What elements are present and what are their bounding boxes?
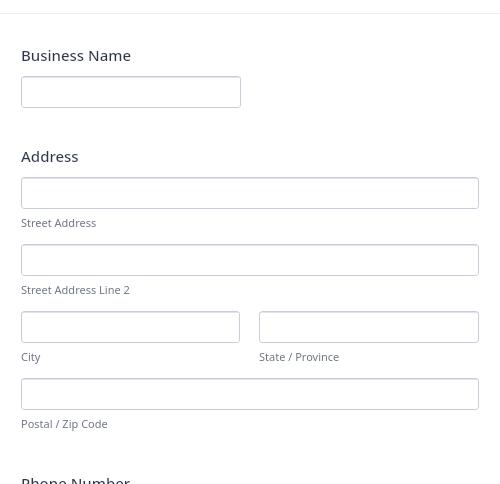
button[interactable]: Postal / Zip Code <box>21 378 479 410</box>
staticText: Business Name <box>21 45 132 65</box>
staticText: Postal / Zip Code <box>21 416 108 431</box>
staticText: Address <box>21 146 79 166</box>
staticText: State / Province <box>259 349 340 364</box>
button[interactable]: State / Province <box>259 311 479 343</box>
button[interactable]: City <box>21 311 240 343</box>
staticText: Phone Number <box>21 473 131 484</box>
staticText: Street Address Line 2 <box>21 282 130 297</box>
staticText: City <box>21 349 41 364</box>
button[interactable]: Street Address Line 2 <box>21 244 479 276</box>
button[interactable]: Business Name <box>21 76 241 108</box>
staticText: Street Address <box>21 215 97 230</box>
button[interactable]: Street Address <box>21 177 479 209</box>
